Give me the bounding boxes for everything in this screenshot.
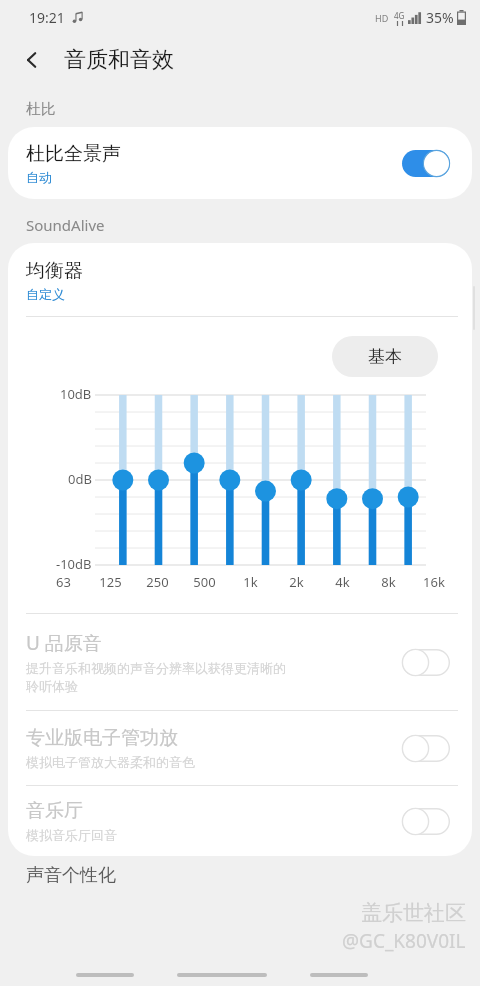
button[interactable]: Back (12, 40, 52, 80)
staticText: 8k (381, 573, 396, 591)
button[interactable]: 专业版电子管功放 (8, 711, 472, 785)
staticText: 4k (335, 573, 350, 591)
button[interactable]: 音乐厅 (8, 786, 472, 856)
button[interactable]: 均衡器 (8, 243, 472, 316)
staticText: 盖乐世社区 (361, 900, 466, 926)
button[interactable]: 基本 (332, 336, 438, 377)
staticText: U 品原音 (26, 630, 102, 656)
staticText: 0dB (68, 470, 92, 488)
button[interactable]: 杜比全景声 (8, 127, 472, 199)
staticText: HD (375, 12, 389, 24)
button[interactable]: Toggle off (402, 735, 450, 762)
staticText: @GC_K80V0IL (342, 928, 466, 954)
button[interactable]: Home (177, 973, 267, 977)
staticText: 250 (146, 573, 169, 591)
staticText: 19:21 (29, 8, 65, 27)
staticText: 模拟音乐厅回音 (26, 827, 117, 843)
staticText: -10dB (56, 555, 92, 573)
staticText: SoundAlive (26, 215, 105, 235)
staticText: 杜比全景声 (26, 142, 121, 166)
button[interactable]: Back (310, 973, 368, 977)
staticText: 自定义 (26, 286, 65, 302)
button[interactable]: Toggle off (402, 649, 450, 676)
button[interactable]: Recents (76, 973, 134, 977)
staticText: 音乐厅 (26, 799, 83, 823)
staticText: 均衡器 (26, 259, 83, 283)
staticText: 提升音乐和视频的声音分辨率以获得更清晰的 聆听体验 (26, 660, 286, 695)
staticText: 基本 (368, 346, 402, 367)
staticText: 声音个性化 (26, 864, 116, 887)
staticText: 音质和音效 (64, 46, 174, 74)
staticText: 4G (394, 10, 405, 21)
button[interactable]: Toggle on (402, 150, 450, 177)
button[interactable]: Toggle off (402, 808, 450, 835)
staticText: 63 (56, 573, 71, 591)
staticText: 35% (426, 8, 454, 27)
staticText: 2k (289, 573, 304, 591)
staticText: 专业版电子管功放 (26, 726, 178, 750)
staticText: 1k (243, 573, 258, 591)
staticText: 模拟电子管放大器柔和的音色 (26, 754, 195, 770)
staticText: 16k (423, 573, 445, 591)
staticText: 自动 (26, 169, 52, 185)
staticText: 500 (193, 573, 216, 591)
staticText: 杜比 (26, 100, 56, 119)
button[interactable]: U 品原音 (8, 614, 472, 710)
staticText: 125 (99, 573, 122, 591)
staticText: 10dB (60, 385, 92, 403)
